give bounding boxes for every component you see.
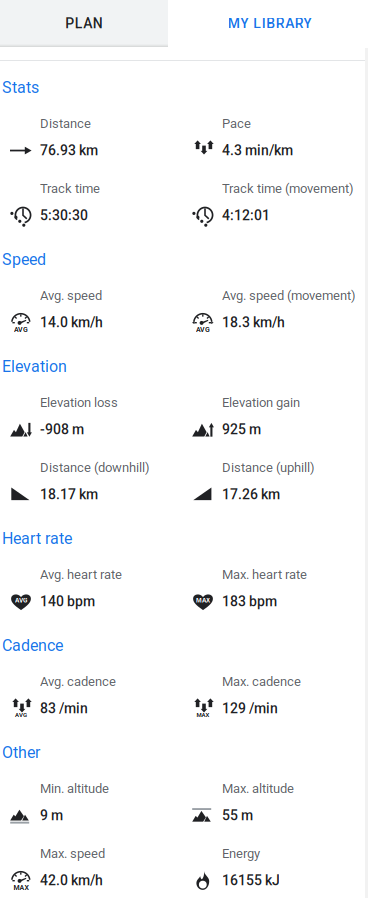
staticText: Avg. speed <box>40 288 102 303</box>
staticText: 140 bpm <box>40 593 95 610</box>
staticText: 4:12:01 <box>222 207 270 224</box>
staticText: Cadence <box>2 636 63 655</box>
staticText: AVG <box>14 325 28 334</box>
staticText: Min. altitude <box>40 781 109 796</box>
staticText: MAX <box>196 711 209 718</box>
staticText: 76.93 km <box>40 142 98 159</box>
staticText: AVG <box>15 711 27 718</box>
staticText: 17.26 km <box>222 486 280 503</box>
staticText: Avg. speed (movement) <box>222 288 356 303</box>
staticText: AVG <box>15 596 27 604</box>
staticText: Avg. heart rate <box>40 567 122 582</box>
button[interactable]: MY LIBRARY <box>168 0 372 47</box>
staticText: PLAN <box>65 15 103 32</box>
staticText: MY LIBRARY <box>228 15 312 32</box>
staticText: Elevation <box>2 357 67 376</box>
staticText: 18.3 km/h <box>222 314 285 331</box>
staticText: Heart rate <box>2 529 72 548</box>
staticText: MAX <box>13 883 28 892</box>
staticText: 4.3 min/km <box>222 142 293 159</box>
staticText: -908 m <box>40 421 84 438</box>
staticText: Energy <box>222 846 260 861</box>
button[interactable]: PLAN <box>0 0 168 47</box>
staticText: Pace <box>222 116 251 131</box>
staticText: AVG <box>196 325 210 334</box>
staticText: Speed <box>2 250 46 269</box>
staticText: Distance (downhill) <box>40 460 150 475</box>
staticText: 16155 kJ <box>222 872 280 889</box>
staticText: Stats <box>2 78 39 97</box>
staticText: 9 m <box>40 807 63 824</box>
staticText: Track time (movement) <box>222 181 354 196</box>
staticText: Track time <box>40 181 100 196</box>
staticText: 18.17 km <box>40 486 98 503</box>
staticText: Max. altitude <box>222 781 294 796</box>
staticText: 42.0 km/h <box>40 872 103 889</box>
staticText: Max. speed <box>40 846 105 861</box>
staticText: Max. heart rate <box>222 567 307 582</box>
staticText: 925 m <box>222 421 261 438</box>
staticText: Avg. cadence <box>40 674 116 689</box>
staticText: Other <box>2 743 40 762</box>
staticText: Distance (uphill) <box>222 460 315 475</box>
staticText: Max. cadence <box>222 674 301 689</box>
staticText: 14.0 km/h <box>40 314 103 331</box>
staticText: Elevation gain <box>222 395 300 410</box>
staticText: 129 /min <box>222 700 278 717</box>
staticText: MAX <box>196 596 210 604</box>
staticText: 183 bpm <box>222 593 277 610</box>
staticText: Distance <box>40 116 91 131</box>
staticText: 5:30:30 <box>40 207 88 224</box>
staticText: 83 /min <box>40 700 88 717</box>
staticText: Elevation loss <box>40 395 118 410</box>
staticText: 55 m <box>222 807 253 824</box>
